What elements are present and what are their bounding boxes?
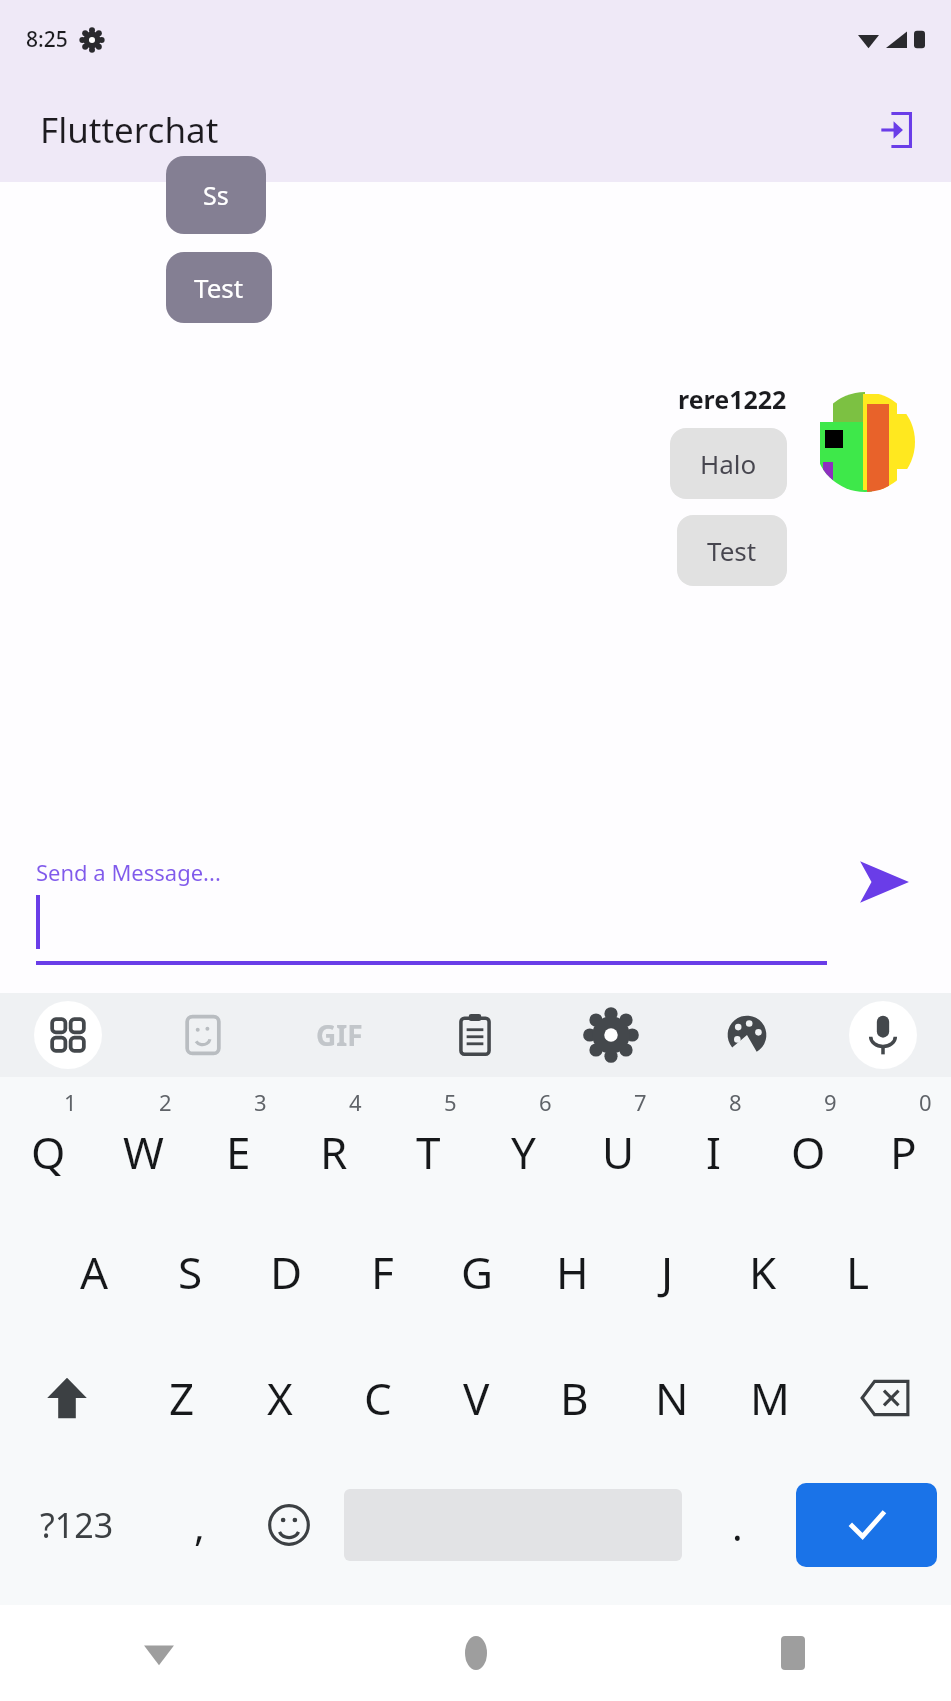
button[interactable]: rere1222 avatar [815, 392, 915, 492]
button[interactable]: M [721, 1335, 819, 1461]
staticText: E [226, 1122, 251, 1182]
staticText: Test [194, 270, 244, 305]
staticText: W [123, 1122, 164, 1182]
button[interactable]: 5 [381, 1083, 476, 1209]
button[interactable]: 1 [0, 1083, 96, 1209]
staticText: . [732, 1498, 743, 1552]
button[interactable]: 2 [96, 1083, 191, 1209]
staticText: Test [707, 533, 757, 568]
button[interactable]: Ss [166, 156, 266, 234]
staticText: ?123 [40, 1502, 114, 1548]
staticText: 8:25 [26, 25, 68, 54]
button[interactable]: Test [677, 515, 787, 586]
button[interactable]: 9 [761, 1083, 856, 1209]
staticText: 0 [919, 1087, 932, 1117]
button[interactable]: , [154, 1461, 244, 1589]
button[interactable]: V [427, 1335, 525, 1461]
button[interactable]: L [810, 1209, 905, 1335]
button[interactable]: C [329, 1335, 427, 1461]
button[interactable]: N [623, 1335, 721, 1461]
staticText: 6 [539, 1087, 552, 1117]
button[interactable]: Enter [796, 1483, 937, 1567]
staticText: X [267, 1368, 293, 1428]
button[interactable]: Logout [865, 100, 925, 160]
staticText: H [556, 1242, 589, 1302]
button[interactable]: 3 [191, 1083, 286, 1209]
button[interactable]: 7 [571, 1083, 666, 1209]
staticText: D [270, 1242, 303, 1302]
staticText: B [560, 1368, 589, 1428]
button[interactable]: A [46, 1209, 142, 1335]
button[interactable]: . [692, 1461, 782, 1589]
button[interactable]: D [238, 1209, 334, 1335]
button[interactable]: G [430, 1209, 525, 1335]
staticText: 1 [64, 1087, 77, 1117]
button[interactable]: F [334, 1209, 430, 1335]
staticText: F [371, 1242, 394, 1302]
button[interactable]: Voice input [815, 993, 951, 1077]
staticText: , [194, 1498, 205, 1552]
button[interactable]: ?123 [0, 1461, 154, 1589]
staticText: R [320, 1122, 348, 1182]
staticText: Halo [700, 446, 757, 481]
staticText: Z [169, 1368, 195, 1428]
button[interactable]: K [715, 1209, 810, 1335]
button[interactable]: Clipboard [407, 993, 543, 1077]
staticText: 2 [159, 1087, 172, 1117]
button[interactable]: GIF [271, 993, 407, 1077]
staticText: K [749, 1242, 777, 1302]
staticText: A [80, 1242, 109, 1302]
staticText: I [706, 1122, 721, 1182]
staticText: J [661, 1242, 674, 1302]
button[interactable]: Home [317, 1605, 634, 1701]
button[interactable]: Shift [0, 1335, 133, 1461]
button[interactable]: Halo [670, 428, 787, 499]
button[interactable]: H [525, 1209, 620, 1335]
button[interactable]: 4 [286, 1083, 381, 1209]
staticText: Q [31, 1122, 66, 1182]
staticText: V [463, 1368, 490, 1428]
staticText: Y [511, 1122, 536, 1182]
button[interactable]: Stickers [135, 993, 271, 1077]
button[interactable]: Send [847, 845, 921, 919]
button[interactable]: Back [0, 1605, 317, 1701]
staticText: Send a Message... [36, 857, 221, 887]
staticText: C [364, 1368, 392, 1428]
staticText: 5 [444, 1087, 457, 1117]
staticText: M [750, 1368, 790, 1428]
staticText: Ss [203, 178, 229, 212]
staticText: T [416, 1122, 441, 1182]
button[interactable]: Z [133, 1335, 231, 1461]
staticText: rere1222 [678, 382, 787, 416]
button[interactable]: Settings [543, 993, 679, 1077]
staticText: U [602, 1122, 635, 1182]
button[interactable]: Emoji [244, 1461, 334, 1589]
button[interactable]: Theme [679, 993, 815, 1077]
staticText: GIF [316, 1016, 363, 1054]
button[interactable]: Test [166, 252, 272, 323]
button[interactable]: 6 [476, 1083, 571, 1209]
staticText: 8 [729, 1087, 742, 1117]
staticText: 3 [254, 1087, 267, 1117]
button[interactable]: Backspace [819, 1335, 951, 1461]
staticText: L [846, 1242, 870, 1302]
staticText: N [655, 1368, 689, 1428]
staticText: G [461, 1242, 494, 1302]
staticText: S [178, 1242, 203, 1302]
button[interactable]: Recents [634, 1605, 951, 1701]
staticText: Flutterchat [40, 106, 219, 154]
staticText: 7 [634, 1087, 647, 1117]
staticText: 4 [349, 1087, 362, 1117]
button[interactable]: S [142, 1209, 238, 1335]
staticText: 9 [824, 1087, 837, 1117]
button[interactable]: J [620, 1209, 715, 1335]
button[interactable]: 0 [856, 1083, 951, 1209]
button[interactable]: Send a Message... [36, 857, 827, 965]
button[interactable]: B [525, 1335, 623, 1461]
button[interactable]: 8 [666, 1083, 761, 1209]
staticText: P [890, 1122, 917, 1182]
button[interactable]: Apps [0, 993, 135, 1077]
staticText: O [791, 1122, 826, 1182]
button[interactable]: X [231, 1335, 329, 1461]
